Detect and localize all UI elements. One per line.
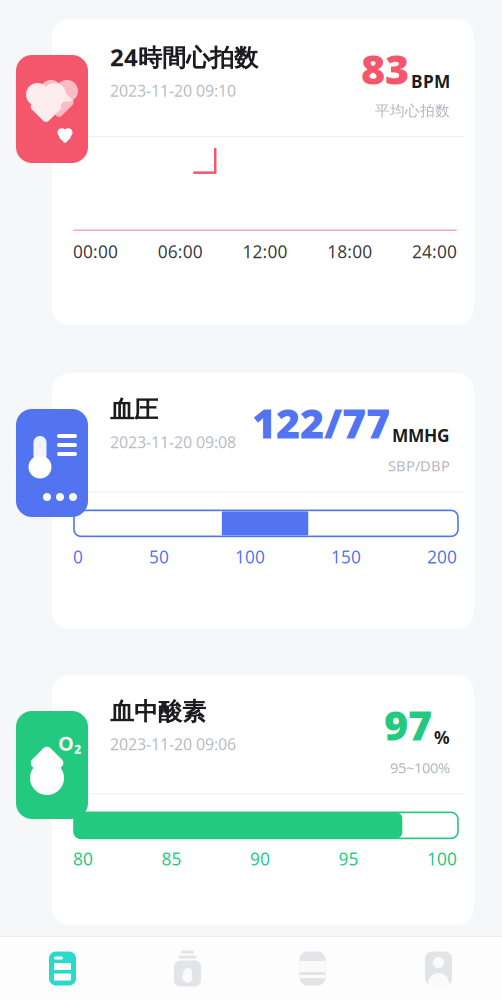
staticText: 97 — [384, 697, 432, 752]
button[interactable]: Report — [0, 937, 125, 1000]
staticText: 2023-11-20 09:06 — [110, 733, 236, 755]
staticText: 150 — [331, 545, 361, 568]
staticText: MMHG — [392, 424, 450, 447]
staticText: 90 — [250, 847, 270, 870]
staticText: 2023-11-20 09:08 — [110, 431, 236, 453]
staticText: 平均心拍数 — [375, 102, 450, 120]
button[interactable]: 血圧 — [0, 373, 502, 629]
staticText: 00:00 — [73, 240, 118, 263]
staticText: 0 — [73, 545, 83, 568]
staticText: 血圧 — [110, 395, 158, 424]
staticText: 18:00 — [327, 240, 372, 263]
staticText: 24:00 — [412, 240, 457, 263]
staticText: % — [434, 726, 450, 749]
staticText: 95 — [338, 847, 358, 870]
staticText: 100 — [235, 545, 265, 568]
button[interactable]: Device — [250, 937, 375, 1000]
button[interactable]: Activity — [125, 937, 250, 1000]
staticText: 83 — [361, 41, 409, 96]
staticText: 200 — [427, 545, 457, 568]
staticText: 血中酸素 — [110, 697, 206, 726]
staticText: 95~100% — [390, 758, 450, 777]
staticText: BPM — [411, 70, 450, 93]
staticText: 24時間心拍数 — [110, 41, 258, 73]
staticText: 06:00 — [158, 240, 203, 263]
staticText: 122/77 — [252, 395, 390, 450]
staticText: 50 — [149, 545, 169, 568]
button[interactable]: 血中酸素 — [0, 675, 502, 925]
staticText: 12:00 — [242, 240, 287, 263]
button[interactable]: Profile — [375, 937, 502, 1000]
button[interactable]: 24時間心拍数 — [0, 19, 502, 325]
staticText: 100 — [427, 847, 457, 870]
staticText: O₂ — [58, 730, 82, 756]
staticText: SBP/DBP — [388, 456, 450, 475]
staticText: 85 — [161, 847, 181, 870]
staticText: 2023-11-20 09:10 — [110, 80, 236, 101]
staticText: 80 — [73, 847, 93, 870]
